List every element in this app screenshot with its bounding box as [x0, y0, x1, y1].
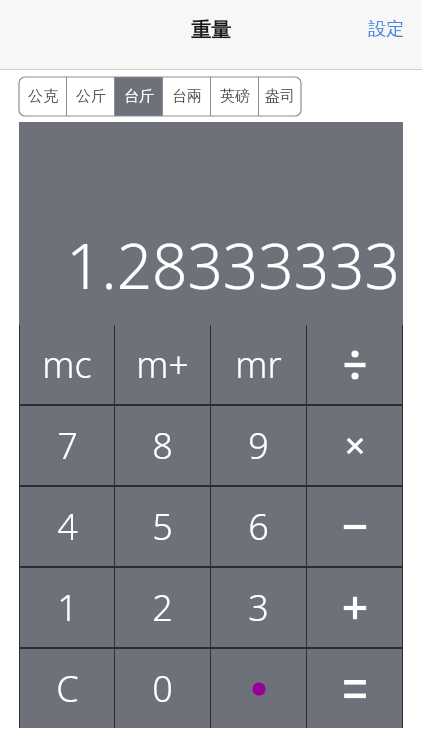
button[interactable]: 5: [115, 487, 210, 566]
staticText: mc: [42, 340, 92, 389]
button[interactable]: C: [20, 649, 114, 728]
staticText: 公克: [28, 87, 58, 106]
staticText: 0: [152, 664, 173, 713]
staticText: 7: [57, 421, 78, 470]
button[interactable]: 7: [20, 406, 114, 485]
button[interactable]: 1: [20, 568, 114, 647]
button[interactable]: Divide: [307, 325, 402, 404]
staticText: 1.28333333: [66, 223, 400, 307]
button[interactable]: 8: [115, 406, 210, 485]
staticText: 1: [57, 583, 78, 632]
staticText: 3: [248, 583, 269, 632]
button[interactable]: Subtract: [307, 487, 402, 566]
button[interactable]: 英磅: [211, 77, 258, 116]
staticText: 台兩: [172, 87, 202, 106]
button[interactable]: 9: [211, 406, 306, 485]
staticText: m+: [136, 340, 189, 389]
staticText: 6: [248, 502, 269, 551]
staticText: 公斤: [76, 87, 106, 106]
staticText: 英磅: [220, 87, 250, 106]
button[interactable]: 盎司: [259, 77, 301, 116]
staticText: 盎司: [265, 87, 295, 106]
button[interactable]: m+: [115, 325, 210, 404]
staticText: 8: [152, 421, 173, 470]
button[interactable]: Equals: [307, 649, 402, 728]
button[interactable]: 4: [20, 487, 114, 566]
button[interactable]: 公斤: [67, 77, 114, 116]
button[interactable]: 0: [115, 649, 210, 728]
button[interactable]: 6: [211, 487, 306, 566]
button[interactable]: Add: [307, 568, 402, 647]
button[interactable]: 公克: [19, 77, 66, 116]
staticText: 重量: [191, 18, 231, 43]
button[interactable]: Multiply: [307, 406, 402, 485]
button[interactable]: 設定: [354, 8, 418, 51]
staticText: C: [56, 664, 79, 713]
staticText: 9: [248, 421, 269, 470]
button[interactable]: 3: [211, 568, 306, 647]
staticText: 5: [152, 502, 173, 551]
button[interactable]: mr: [211, 325, 306, 404]
button[interactable]: mc: [20, 325, 114, 404]
staticText: mr: [235, 340, 282, 389]
staticText: 2: [152, 583, 173, 632]
staticText: 4: [57, 502, 78, 551]
staticText: 台斤: [124, 87, 154, 106]
button[interactable]: 台兩: [163, 77, 210, 116]
button[interactable]: 2: [115, 568, 210, 647]
staticText: 設定: [368, 18, 404, 41]
button[interactable]: 台斤: [115, 77, 162, 116]
button[interactable]: Decimal point: [211, 649, 306, 728]
